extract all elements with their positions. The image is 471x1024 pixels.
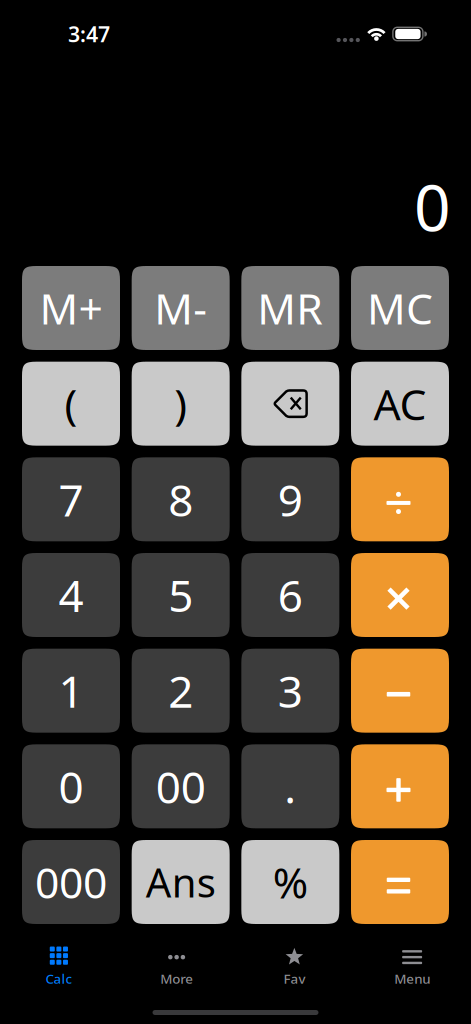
staticText: More [160, 970, 193, 987]
button[interactable]: ) [132, 362, 230, 446]
staticText: 9 [278, 470, 303, 528]
staticText: 6 [278, 566, 303, 624]
button[interactable]: . [241, 744, 339, 828]
button[interactable]: Ans [132, 840, 230, 924]
button[interactable]: Delete [241, 362, 339, 446]
staticText: 0 [58, 757, 83, 815]
button[interactable]: MC [351, 266, 449, 350]
button[interactable]: ( [22, 362, 120, 446]
button[interactable]: % [241, 840, 339, 924]
button[interactable]: 2 [132, 649, 230, 733]
staticText: ( [64, 375, 77, 432]
staticText: 3:47 [68, 20, 110, 48]
button[interactable]: 4 [22, 553, 120, 637]
button[interactable]: 3 [241, 649, 339, 733]
button[interactable]: Divide [351, 457, 449, 541]
button[interactable]: 9 [241, 457, 339, 541]
staticText: . [284, 757, 296, 815]
staticText: Calc [45, 970, 72, 987]
button[interactable]: 1 [22, 649, 120, 733]
staticText: 000 [35, 854, 107, 910]
staticText: MC [367, 280, 433, 336]
staticText: MR [257, 280, 323, 336]
staticText: 8 [168, 470, 193, 528]
staticText: 0 [414, 164, 451, 249]
staticText: M- [154, 280, 207, 336]
button[interactable]: M+ [22, 266, 120, 350]
button[interactable]: Calc [0, 946, 118, 986]
staticText: 1 [58, 661, 83, 720]
button[interactable]: Fav [235, 946, 353, 986]
staticText: ) [174, 375, 187, 432]
staticText: Fav [283, 970, 305, 987]
staticText: 5 [168, 566, 193, 624]
button[interactable]: 6 [241, 553, 339, 637]
button[interactable]: 5 [132, 553, 230, 637]
button[interactable]: MR [241, 266, 339, 350]
button[interactable]: 7 [22, 457, 120, 541]
button[interactable]: Plus [351, 744, 449, 828]
staticText: % [273, 854, 308, 910]
staticText: 00 [156, 757, 206, 815]
button[interactable]: 00 [132, 744, 230, 828]
button[interactable]: Equals [351, 840, 449, 924]
staticText: M+ [39, 280, 102, 336]
button[interactable]: More [118, 946, 236, 986]
staticText: Ans [146, 855, 216, 908]
button[interactable]: 8 [132, 457, 230, 541]
button[interactable]: Minus [351, 649, 449, 733]
button[interactable]: 000 [22, 840, 120, 924]
staticText: 2 [168, 661, 193, 720]
staticText: 3 [278, 661, 303, 720]
staticText: Menu [394, 970, 430, 987]
button[interactable]: M- [132, 266, 230, 350]
button[interactable]: Menu [353, 946, 471, 986]
button[interactable]: Multiply [351, 553, 449, 637]
button[interactable]: AC [351, 362, 449, 446]
staticText: 7 [58, 470, 83, 528]
staticText: AC [373, 375, 426, 432]
staticText: 4 [58, 566, 83, 624]
button[interactable]: 0 [22, 744, 120, 828]
